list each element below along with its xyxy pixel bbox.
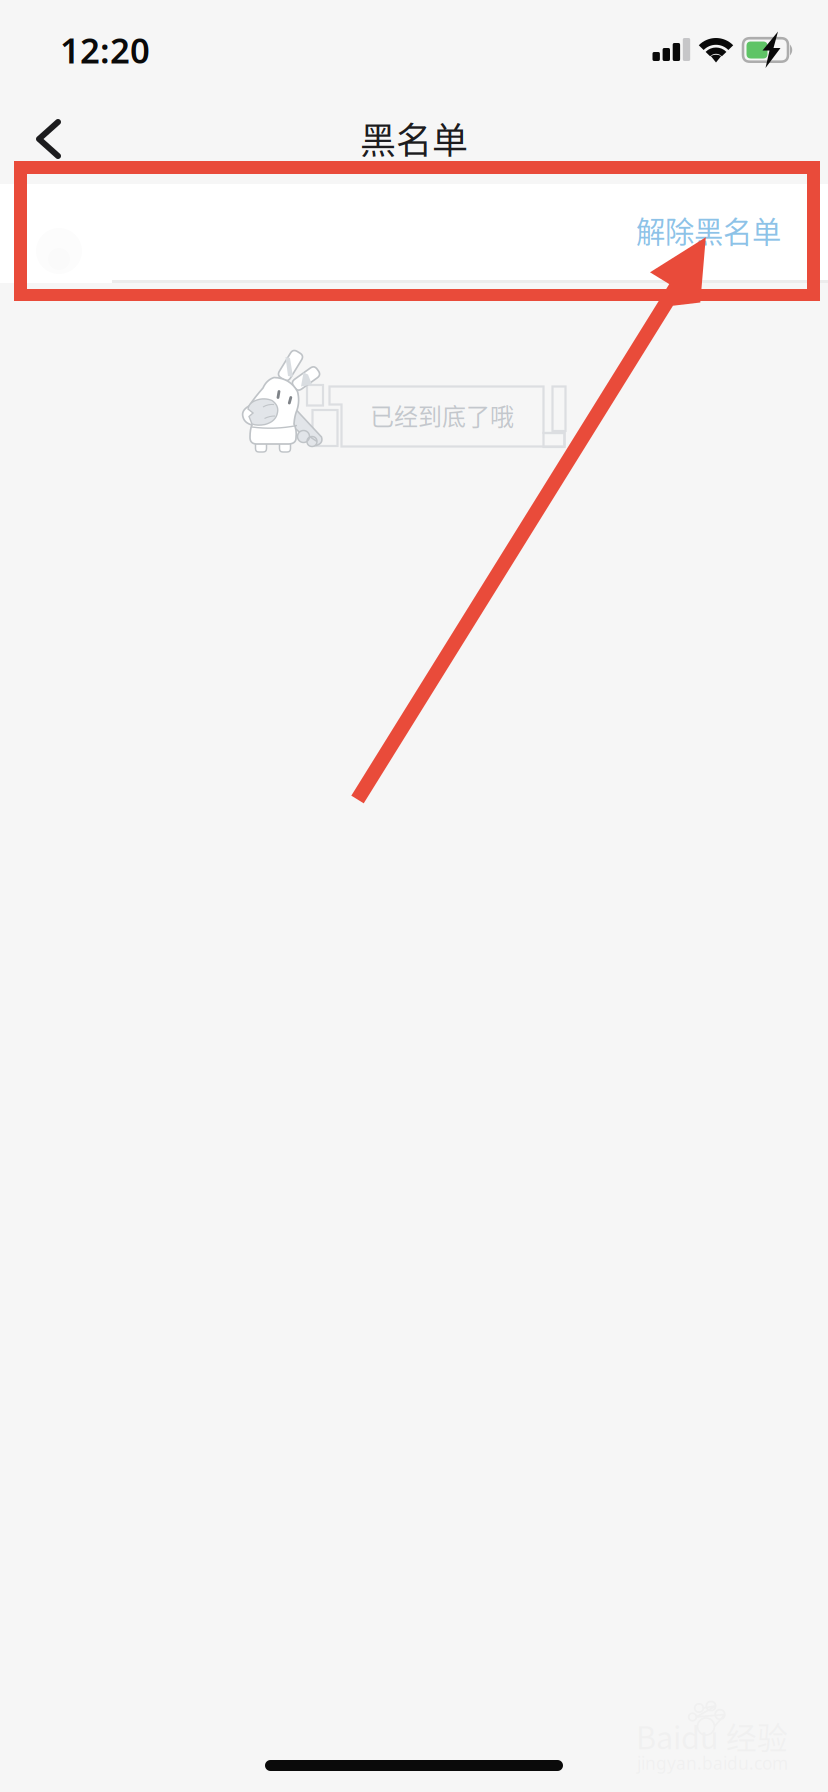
staticText: 已经到底了哦 xyxy=(370,398,514,432)
staticText: 解除黑名单 xyxy=(636,209,781,251)
staticText: 黑名单 xyxy=(360,112,468,164)
button[interactable]: Back xyxy=(0,0,104,84)
staticText: 12:20 xyxy=(60,27,150,73)
button[interactable]: 解除黑名单 xyxy=(561,180,781,280)
